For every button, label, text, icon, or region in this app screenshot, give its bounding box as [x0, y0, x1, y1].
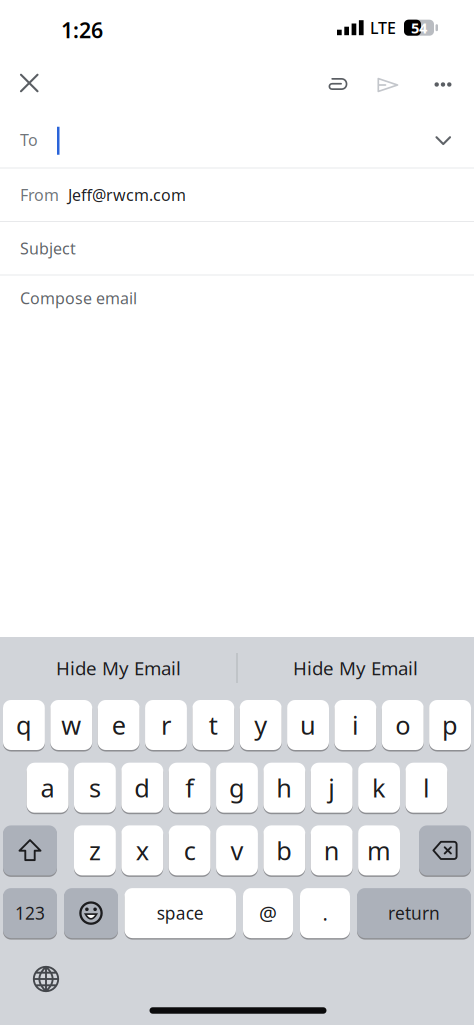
- staticText: u: [300, 708, 316, 742]
- button[interactable]: k: [358, 762, 400, 813]
- button[interactable]: p: [429, 699, 471, 750]
- button[interactable]: s: [74, 762, 116, 813]
- staticText: e: [112, 708, 126, 742]
- staticText: c: [184, 834, 196, 867]
- button[interactable]: .: [300, 888, 350, 939]
- button[interactable]: v: [216, 825, 258, 876]
- button[interactable]: r: [145, 699, 187, 750]
- staticText: p: [442, 708, 458, 742]
- button[interactable]: z: [74, 825, 116, 876]
- button[interactable]: [19, 73, 39, 93]
- staticText: a: [41, 771, 55, 804]
- staticText: To: [20, 129, 38, 150]
- staticText: Subject: [20, 238, 76, 259]
- button[interactable]: Subject: [0, 222, 474, 275]
- button[interactable]: [32, 965, 59, 992]
- button[interactable]: 123: [3, 888, 57, 939]
- button[interactable]: [434, 81, 451, 85]
- staticText: x: [136, 834, 149, 867]
- staticText: w: [61, 708, 81, 742]
- staticText: n: [324, 834, 340, 867]
- button[interactable]: [377, 75, 399, 91]
- staticText: k: [372, 771, 386, 804]
- staticText: l: [423, 771, 430, 804]
- staticText: t: [209, 708, 218, 742]
- button[interactable]: n: [311, 825, 353, 876]
- button[interactable]: To: [0, 112, 474, 168]
- button[interactable]: j: [311, 762, 353, 813]
- button[interactable]: x: [121, 825, 163, 876]
- staticText: g: [229, 771, 245, 804]
- button[interactable]: return: [357, 888, 471, 939]
- button[interactable]: m: [358, 825, 400, 876]
- staticText: v: [230, 834, 243, 867]
- button[interactable]: space: [124, 888, 236, 939]
- staticText: m: [367, 834, 391, 867]
- staticText: i: [352, 708, 359, 742]
- staticText: 123: [15, 902, 45, 925]
- staticText: h: [276, 771, 292, 804]
- button[interactable]: t: [192, 699, 234, 750]
- staticText: s: [89, 771, 101, 804]
- staticText: Compose email: [20, 287, 137, 309]
- staticText: r: [161, 708, 171, 742]
- staticText: f: [185, 771, 194, 804]
- staticText: space: [157, 902, 204, 925]
- staticText: From: [20, 184, 59, 205]
- button[interactable]: a: [27, 762, 69, 813]
- button[interactable]: Compose email: [0, 275, 474, 320]
- button[interactable]: g: [216, 762, 258, 813]
- staticText: Hide My Email: [56, 656, 181, 680]
- staticText: o: [395, 708, 410, 742]
- button[interactable]: u: [287, 699, 329, 750]
- button[interactable]: [3, 825, 57, 876]
- button[interactable]: [64, 888, 118, 939]
- staticText: d: [134, 771, 150, 804]
- staticText: LTE: [370, 17, 396, 38]
- button[interactable]: @: [243, 888, 293, 939]
- staticText: .: [322, 900, 327, 926]
- staticText: b: [276, 834, 292, 867]
- button[interactable]: q: [3, 699, 45, 750]
- staticText: Jeff@rwcm.com: [68, 184, 186, 205]
- button[interactable]: i: [334, 699, 376, 750]
- staticText: y: [254, 708, 267, 742]
- staticText: q: [16, 708, 32, 742]
- staticText: 1:26: [61, 16, 103, 44]
- button[interactable]: From: [0, 168, 474, 222]
- button[interactable]: l: [405, 762, 447, 813]
- button[interactable]: y: [240, 699, 282, 750]
- button[interactable]: o: [382, 699, 424, 750]
- staticText: @: [259, 900, 277, 926]
- button[interactable]: [326, 77, 347, 89]
- staticText: z: [89, 834, 101, 867]
- button[interactable]: e: [98, 699, 140, 750]
- button[interactable]: h: [263, 762, 305, 813]
- staticText: return: [388, 902, 440, 925]
- button[interactable]: d: [121, 762, 163, 813]
- button[interactable]: w: [50, 699, 92, 750]
- button[interactable]: [419, 825, 471, 876]
- staticText: Hide My Email: [293, 656, 418, 680]
- button[interactable]: Hide My Email: [0, 640, 236, 696]
- button[interactable]: c: [169, 825, 211, 876]
- button[interactable]: f: [169, 762, 211, 813]
- staticText: j: [328, 771, 335, 804]
- button[interactable]: Hide My Email: [237, 640, 473, 696]
- button[interactable]: b: [263, 825, 305, 876]
- staticText: 54: [411, 18, 427, 37]
